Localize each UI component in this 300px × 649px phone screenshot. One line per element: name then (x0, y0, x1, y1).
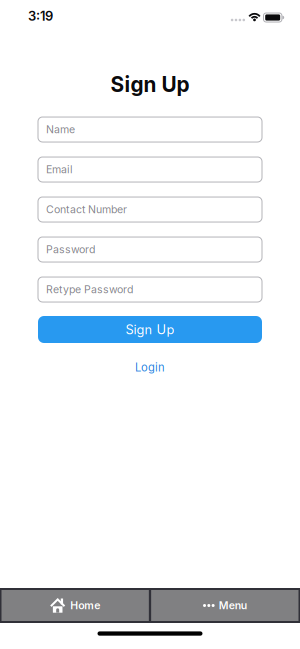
staticText: Menu (219, 599, 247, 612)
staticText: Login (135, 361, 165, 374)
staticText: Email (46, 163, 73, 176)
button[interactable]: Menu (151, 590, 298, 621)
staticText: Retype Password (46, 283, 133, 296)
button[interactable]: Sign Up (38, 316, 262, 343)
button[interactable]: Login (135, 361, 165, 374)
staticText: Contact Number (46, 203, 127, 216)
staticText: 3:19 (28, 8, 53, 24)
staticText: Sign Up (110, 72, 189, 97)
staticText: Home (70, 599, 100, 612)
staticText: Name (46, 123, 75, 136)
staticText: Sign Up (125, 322, 174, 337)
staticText: Password (46, 243, 95, 256)
button[interactable]: Home (1, 590, 149, 621)
